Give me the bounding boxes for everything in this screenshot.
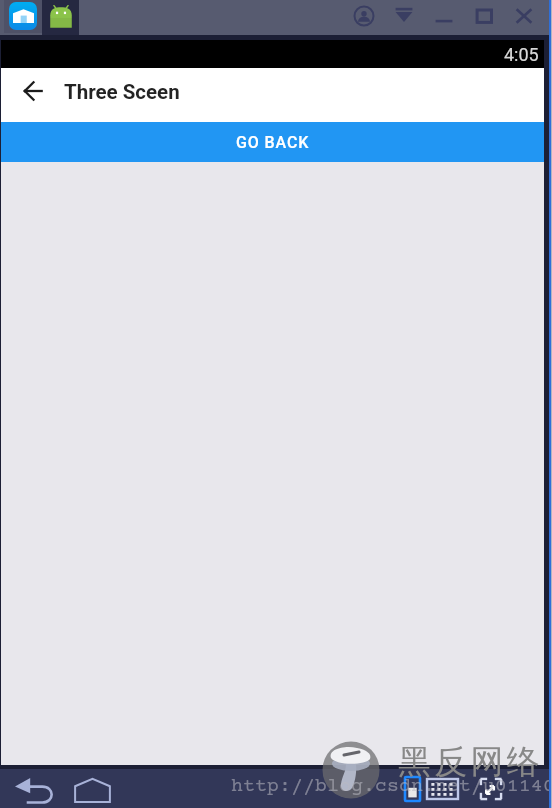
button[interactable]: Back <box>9 67 57 115</box>
button[interactable]: Home tab <box>4 0 42 33</box>
button[interactable]: Account <box>349 1 379 31</box>
button[interactable]: Android emulator tab <box>42 0 79 35</box>
staticText: 黑反网络 <box>398 741 543 783</box>
staticText: http://blog.csdn.net/u011408619 <box>231 775 552 797</box>
button[interactable]: Back <box>13 772 56 806</box>
staticText: Three Sceen <box>64 80 180 104</box>
button[interactable]: GO BACK <box>1 122 544 162</box>
button[interactable]: Expand <box>389 1 419 31</box>
button[interactable]: Minimize <box>429 1 459 31</box>
button[interactable]: Keyboard <box>426 773 458 805</box>
button[interactable]: Screenshot <box>400 774 425 804</box>
button[interactable]: Maximize <box>469 1 499 31</box>
button[interactable]: Fullscreen <box>476 774 506 804</box>
button[interactable]: Home <box>71 772 113 806</box>
staticText: 4:05 <box>504 44 539 65</box>
button[interactable]: Close <box>509 1 539 31</box>
staticText: GO BACK <box>236 133 310 152</box>
